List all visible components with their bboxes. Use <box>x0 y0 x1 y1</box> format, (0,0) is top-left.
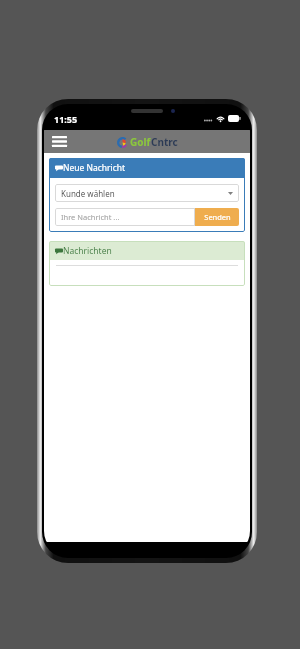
button[interactable]: Senden <box>195 208 239 226</box>
staticText: Golf <box>130 135 151 149</box>
staticText: Nachrichten <box>63 245 112 257</box>
button[interactable]: Ihre Nachricht ... <box>55 208 195 226</box>
button[interactable]: Menu <box>48 132 70 151</box>
staticText: Cntrc <box>151 135 178 149</box>
staticText: 11:55 <box>54 113 78 125</box>
staticText: Ihre Nachricht ... <box>61 212 120 222</box>
button[interactable]: Golf <box>117 135 178 149</box>
staticText: Kunde wählen <box>61 188 115 199</box>
button[interactable]: Kunde wählen <box>55 184 239 202</box>
staticText: Neue Nachricht <box>63 162 126 174</box>
staticText: Senden <box>204 212 231 222</box>
